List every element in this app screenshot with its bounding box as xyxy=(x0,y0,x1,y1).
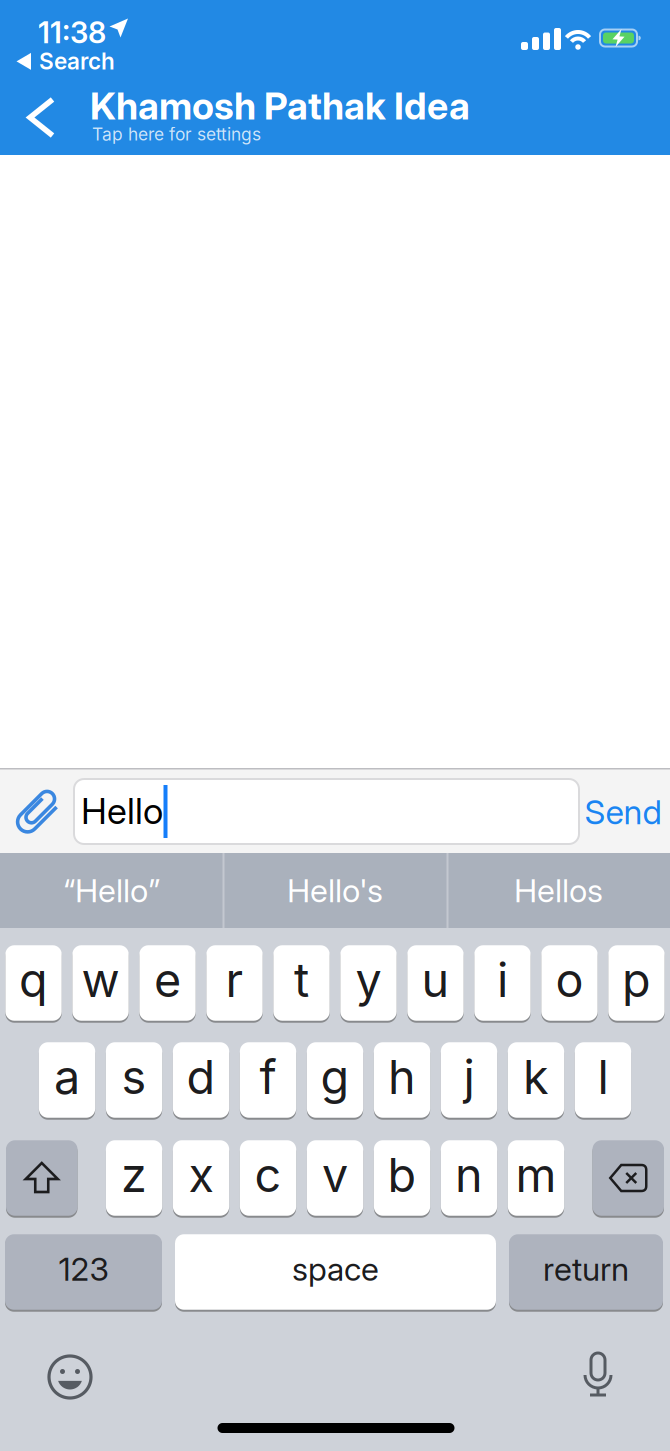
staticText: Hellos xyxy=(514,872,603,909)
button[interactable]: g xyxy=(307,1041,363,1119)
button[interactable]: l xyxy=(575,1041,631,1119)
button[interactable]: return xyxy=(509,1233,663,1311)
button[interactable]: m xyxy=(508,1139,564,1217)
staticText: g xyxy=(320,1049,349,1105)
button[interactable]: Back to Search xyxy=(16,48,115,75)
staticText: o xyxy=(555,952,583,1008)
staticText: l xyxy=(597,1049,608,1105)
staticText: Hello xyxy=(81,790,163,832)
staticText: x xyxy=(189,1147,214,1203)
staticText: “Hello” xyxy=(63,872,160,909)
button[interactable]: Dictation xyxy=(577,1351,619,1397)
staticText: t xyxy=(294,952,309,1008)
button[interactable]: Khamosh Pathak Idea xyxy=(90,84,470,128)
staticText: r xyxy=(225,952,243,1008)
staticText: m xyxy=(515,1147,556,1203)
button[interactable]: k xyxy=(508,1041,564,1119)
button[interactable]: s xyxy=(106,1041,162,1119)
button[interactable]: u xyxy=(407,944,464,1022)
staticText: Hello's xyxy=(287,872,383,909)
button[interactable]: Delete xyxy=(592,1139,664,1217)
staticText: q xyxy=(19,952,48,1008)
staticText: space xyxy=(292,1250,379,1288)
button[interactable]: h xyxy=(374,1041,430,1119)
staticText: Search xyxy=(39,48,115,75)
button[interactable]: t xyxy=(273,944,330,1022)
button[interactable]: z xyxy=(106,1139,162,1217)
staticText: w xyxy=(81,952,119,1008)
button[interactable]: Hello's xyxy=(224,853,446,928)
staticText: i xyxy=(497,952,508,1008)
staticText: k xyxy=(523,1049,549,1105)
button[interactable]: f xyxy=(240,1041,296,1119)
staticText: a xyxy=(54,1049,80,1105)
button[interactable]: a xyxy=(39,1041,95,1119)
button[interactable]: 123 xyxy=(5,1233,162,1311)
staticText: v xyxy=(322,1147,348,1203)
button[interactable]: y xyxy=(340,944,397,1022)
staticText: c xyxy=(254,1147,281,1203)
button[interactable]: v xyxy=(307,1139,363,1217)
button[interactable]: Send xyxy=(578,786,667,838)
button[interactable]: q xyxy=(5,944,62,1022)
staticText: Send xyxy=(584,792,661,832)
staticText: u xyxy=(421,952,449,1008)
staticText: 11:38 xyxy=(38,15,106,50)
staticText: p xyxy=(622,952,651,1008)
button[interactable]: j xyxy=(441,1041,497,1119)
staticText: z xyxy=(121,1147,147,1203)
button[interactable]: x xyxy=(173,1139,229,1217)
staticText: h xyxy=(388,1049,416,1105)
staticText: e xyxy=(154,952,181,1008)
button[interactable]: p xyxy=(608,944,665,1022)
button[interactable]: e xyxy=(139,944,196,1022)
staticText: s xyxy=(121,1049,146,1105)
button[interactable]: Shift xyxy=(6,1139,77,1217)
staticText: b xyxy=(387,1147,416,1203)
staticText: 123 xyxy=(58,1250,108,1288)
staticText: f xyxy=(259,1049,276,1105)
button[interactable]: Emoji xyxy=(48,1355,92,1399)
button[interactable]: n xyxy=(441,1139,497,1217)
button[interactable]: b xyxy=(374,1139,430,1217)
button[interactable]: o xyxy=(541,944,598,1022)
staticText: y xyxy=(355,952,381,1008)
button[interactable]: w xyxy=(72,944,129,1022)
staticText: Tap here for settings xyxy=(92,124,261,144)
button[interactable]: Back xyxy=(15,85,68,150)
button[interactable]: Hellos xyxy=(448,853,669,928)
button[interactable]: d xyxy=(173,1041,229,1119)
staticText: return xyxy=(543,1250,629,1288)
button[interactable]: “Hello” xyxy=(1,853,222,928)
staticText: Khamosh Pathak Idea xyxy=(90,84,470,128)
button[interactable]: r xyxy=(206,944,263,1022)
button[interactable]: c xyxy=(240,1139,296,1217)
staticText: d xyxy=(186,1049,215,1105)
button[interactable]: Attach file xyxy=(24,786,50,838)
button[interactable]: space xyxy=(175,1233,496,1311)
staticText: n xyxy=(455,1147,483,1203)
staticText: j xyxy=(463,1049,474,1105)
button[interactable]: i xyxy=(474,944,531,1022)
